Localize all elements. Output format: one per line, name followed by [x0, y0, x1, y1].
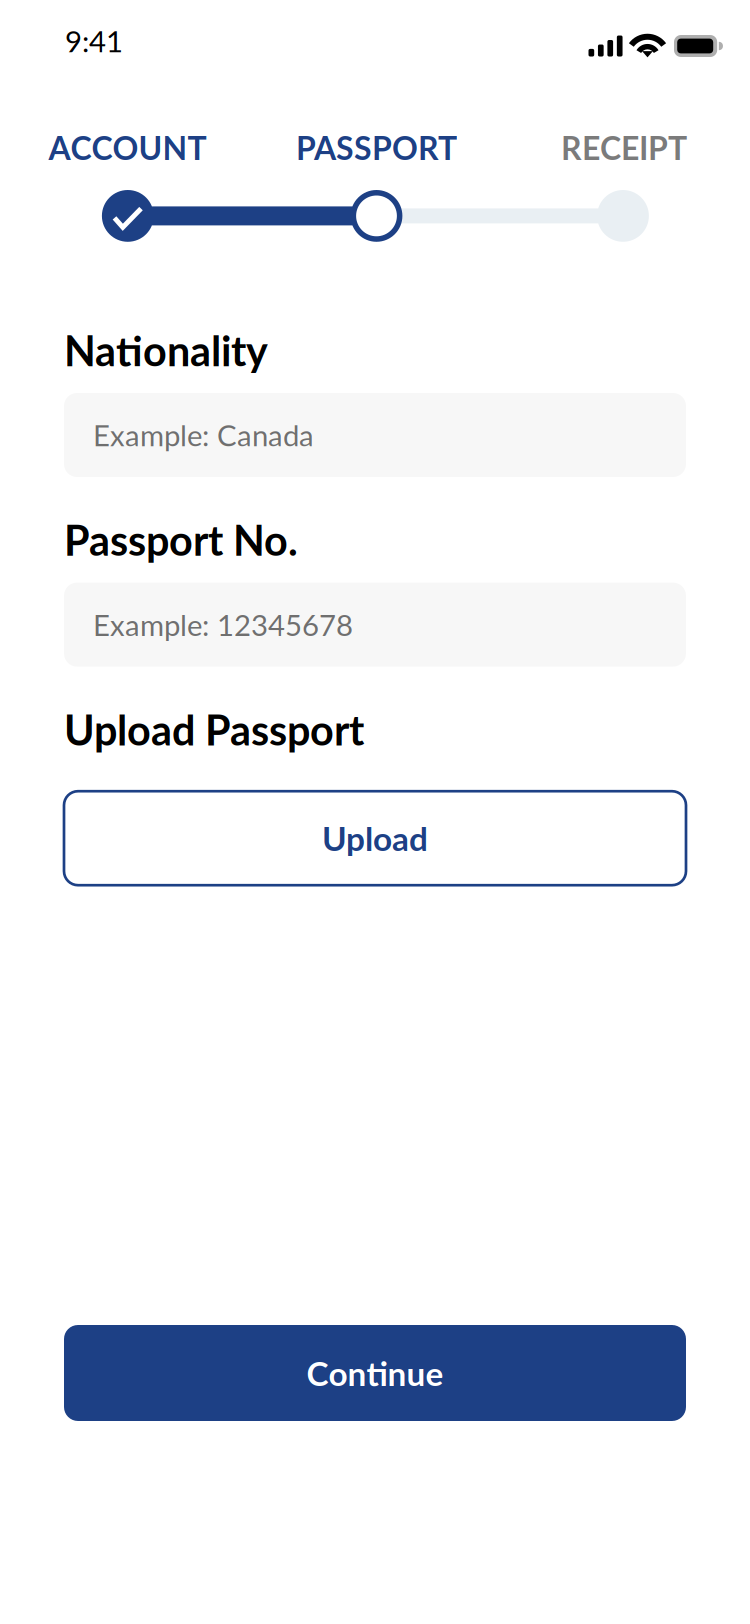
- staticText: Upload: [322, 818, 428, 858]
- button[interactable]: Upload: [64, 791, 686, 885]
- button[interactable]: RECEIPT: [498, 128, 750, 167]
- staticText: Nationality: [64, 325, 268, 375]
- staticText: Example: 12345678: [93, 607, 353, 642]
- button[interactable]: ACCOUNT: [0, 128, 255, 167]
- button[interactable]: Continue: [64, 1325, 686, 1421]
- button[interactable]: Nationality: [64, 393, 686, 477]
- staticText: Example: Canada: [93, 417, 314, 453]
- staticText: Upload Passport: [64, 705, 364, 754]
- button[interactable]: PASSPORT: [255, 128, 498, 167]
- staticText: Continue: [306, 1353, 443, 1393]
- staticText: 9:41: [65, 23, 123, 59]
- staticText: ACCOUNT: [48, 128, 206, 167]
- staticText: RECEIPT: [561, 128, 687, 167]
- staticText: PASSPORT: [296, 128, 457, 167]
- button[interactable]: Passport No.: [64, 583, 686, 667]
- staticText: Passport No.: [64, 515, 298, 565]
